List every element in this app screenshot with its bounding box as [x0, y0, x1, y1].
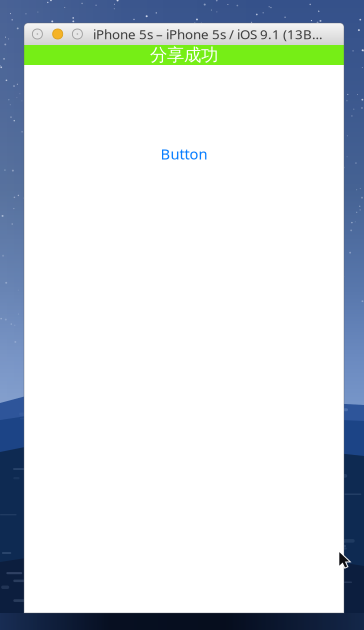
- staticText: iPhone 5s – iPhone 5s / iOS 9.1 (13B…: [93, 25, 323, 43]
- button[interactable]: Button: [160, 144, 207, 163]
- staticText: 分享成功: [150, 44, 218, 66]
- staticText: Button: [160, 144, 207, 163]
